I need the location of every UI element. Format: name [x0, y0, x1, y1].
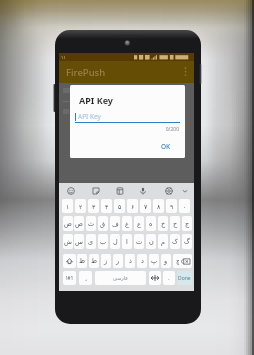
staticText: ح — [173, 220, 178, 228]
button[interactable]: ق — [98, 216, 108, 231]
staticText: Done — [178, 275, 191, 282]
button[interactable]: ۶ — [127, 199, 138, 213]
button[interactable]: ۵ — [114, 199, 125, 213]
staticText: OK — [161, 142, 171, 151]
staticText: غ — [125, 220, 129, 228]
button[interactable]: Done — [177, 271, 192, 285]
button[interactable]: ا — [122, 234, 132, 249]
staticText: فارسی — [113, 275, 128, 281]
staticText: ز — [104, 257, 108, 265]
staticText: ب — [100, 238, 107, 246]
staticText: ک — [172, 238, 178, 246]
button[interactable]: ، — [79, 271, 92, 285]
button[interactable]: ک — [170, 234, 180, 249]
button[interactable]: خ — [158, 216, 168, 231]
button[interactable]: ذ — [125, 254, 135, 268]
staticText: س — [75, 238, 83, 246]
button[interactable]: ظ — [77, 254, 87, 268]
staticText: ۶ — [131, 203, 135, 210]
staticText: ۲ — [79, 203, 83, 210]
staticText: ش — [64, 238, 72, 246]
button[interactable]: ۱ — [62, 199, 73, 213]
button[interactable]: فارسی — [95, 271, 146, 285]
button[interactable]: Shift — [63, 254, 76, 268]
button[interactable]: ۹ — [166, 199, 177, 213]
button[interactable]: . — [163, 271, 175, 285]
button[interactable]: Move cursor — [149, 271, 161, 285]
button[interactable]: ه — [146, 216, 156, 231]
button[interactable]: Settings — [162, 183, 176, 198]
staticText: ر — [116, 257, 120, 265]
button[interactable]: ۷ — [140, 199, 151, 213]
button[interactable]: ر — [113, 254, 123, 268]
button[interactable]: ص — [74, 216, 84, 231]
staticText: . — [168, 274, 170, 282]
button[interactable]: د — [137, 254, 147, 268]
staticText: ۰ — [183, 203, 187, 210]
staticText: ه — [149, 220, 153, 228]
button[interactable]: ۰ — [179, 199, 190, 213]
button[interactable]: Voice input — [136, 183, 150, 198]
button[interactable]: Emoji — [64, 183, 78, 198]
button[interactable]: چ — [173, 254, 183, 268]
staticText: 0/200 — [70, 126, 179, 133]
staticText: ۴ — [105, 203, 109, 210]
button[interactable]: ش — [63, 234, 73, 249]
staticText: ، — [85, 275, 87, 282]
staticText: ط — [91, 257, 98, 265]
staticText: ۹ — [170, 203, 174, 210]
button[interactable]: Backspace — [179, 254, 192, 268]
button[interactable]: پ — [149, 254, 159, 268]
button[interactable]: ل — [110, 234, 120, 249]
button[interactable]: More options — [178, 61, 192, 83]
staticText: ث — [88, 220, 95, 228]
staticText: ی — [88, 238, 94, 246]
button[interactable]: Clipboard — [113, 183, 127, 198]
button[interactable]: ۸ — [153, 199, 164, 213]
staticText: ۵ — [118, 203, 122, 210]
button[interactable]: غ — [122, 216, 132, 231]
button[interactable]: ف — [110, 216, 120, 231]
staticText: و — [164, 257, 168, 265]
button[interactable]: ز — [101, 254, 111, 268]
button[interactable]: ج — [182, 216, 192, 231]
button[interactable]: ع — [134, 216, 144, 231]
staticText: ص — [75, 220, 83, 228]
button[interactable]: Hide keyboard — [178, 183, 192, 198]
button[interactable]: ۴ — [101, 199, 112, 213]
staticText: ج — [185, 220, 190, 228]
button[interactable]: گ — [182, 234, 192, 249]
button[interactable]: و — [161, 254, 171, 268]
button[interactable]: !#1 — [63, 271, 76, 285]
staticText: ظ — [79, 257, 86, 265]
staticText: پ — [151, 257, 158, 265]
staticText: !#1 — [66, 275, 74, 282]
button[interactable]: ۲ — [75, 199, 86, 213]
staticText: API Key — [79, 94, 113, 106]
staticText: ض — [64, 220, 72, 228]
staticText: ۷ — [144, 203, 148, 210]
staticText: م — [161, 238, 166, 246]
button[interactable]: ض — [63, 216, 73, 231]
staticText: چ — [176, 257, 181, 265]
staticText: ۱۱ — [61, 55, 66, 60]
staticText: FirePush — [66, 66, 106, 79]
button[interactable]: ۳ — [88, 199, 99, 213]
button[interactable]: ت — [134, 234, 144, 249]
button[interactable]: م — [158, 234, 168, 249]
button[interactable]: ث — [86, 216, 96, 231]
button[interactable]: ح — [170, 216, 180, 231]
staticText: ا — [126, 238, 128, 246]
button[interactable]: OK — [156, 139, 176, 153]
staticText: ق — [100, 220, 106, 228]
button[interactable]: ط — [89, 254, 99, 268]
staticText: ۳ — [92, 203, 96, 210]
staticText: ن — [149, 238, 154, 246]
button[interactable]: س — [74, 234, 84, 249]
staticText: گ — [184, 238, 190, 246]
button[interactable]: ی — [86, 234, 96, 249]
button[interactable]: ب — [98, 234, 108, 249]
button[interactable]: ن — [146, 234, 156, 249]
staticText: خ — [161, 220, 166, 228]
button[interactable]: Stickers — [89, 183, 103, 198]
